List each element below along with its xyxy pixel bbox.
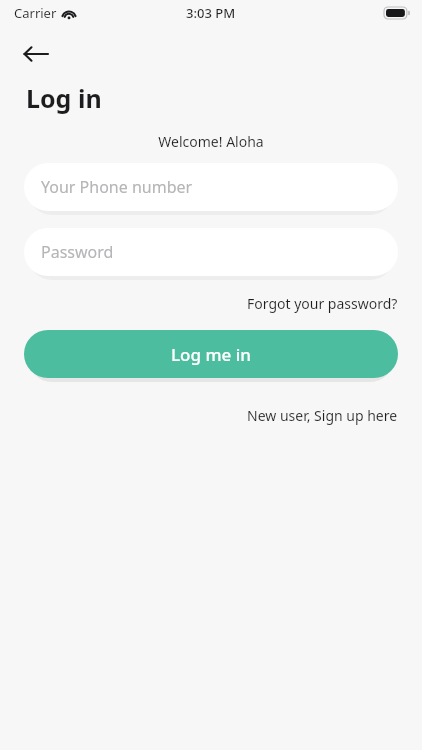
staticText: Your Phone number: [41, 176, 193, 198]
staticText: Password: [41, 241, 114, 263]
button[interactable]: Log me in: [24, 330, 398, 378]
button[interactable]: Back: [14, 33, 56, 75]
staticText: Forgot your password?: [247, 294, 398, 313]
staticText: New user, Sign up here: [247, 406, 398, 425]
staticText: Carrier: [14, 4, 57, 22]
button[interactable]: Password: [24, 228, 398, 276]
staticText: Log in: [26, 81, 102, 115]
button[interactable]: Your Phone number: [24, 163, 398, 211]
button[interactable]: New user, Sign up here: [247, 406, 398, 425]
staticText: Welcome! Aloha: [0, 132, 422, 151]
staticText: 3:03 PM: [186, 4, 236, 22]
button[interactable]: Forgot your password?: [247, 294, 398, 313]
staticText: Log me in: [171, 343, 251, 366]
